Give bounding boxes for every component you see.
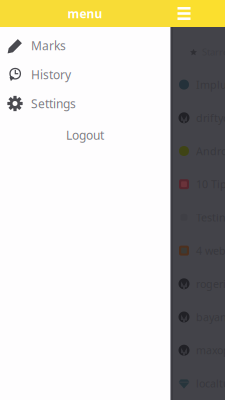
staticText: 4 web (196, 243, 225, 258)
staticText: maxop (196, 343, 225, 357)
staticText: Android (196, 144, 225, 158)
staticText: bayan (196, 310, 225, 324)
staticText: rogerio (196, 277, 225, 291)
staticText: Marks (31, 37, 66, 53)
button[interactable]: Logout (0, 118, 170, 152)
staticText: localtu (196, 376, 225, 390)
staticText: 10 Tips (196, 177, 225, 191)
button[interactable]: History (0, 60, 170, 89)
button[interactable]: Menu (171, 0, 197, 27)
button[interactable]: Marks (0, 31, 170, 60)
staticText: Testing (196, 210, 225, 224)
staticText: Logout (66, 127, 104, 143)
button[interactable]: Settings (0, 89, 170, 118)
staticText: Settings (31, 95, 76, 111)
staticText: menu (67, 5, 102, 21)
staticText: driftyco (196, 111, 225, 125)
staticText: History (31, 66, 71, 82)
staticText: Implus (196, 77, 225, 92)
